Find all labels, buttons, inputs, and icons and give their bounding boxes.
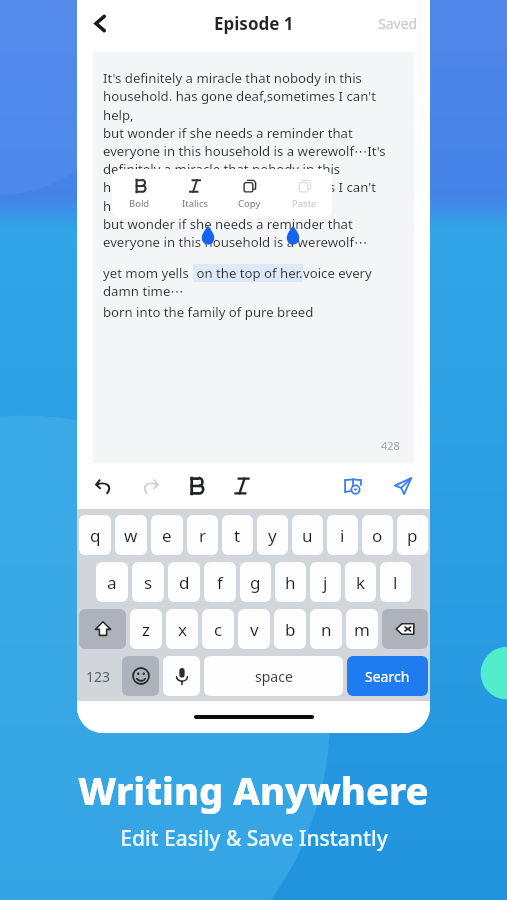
button[interactable]: s xyxy=(132,562,164,602)
button[interactable]: o xyxy=(362,515,393,555)
staticText: s xyxy=(144,571,153,594)
staticText: Copy xyxy=(238,197,261,210)
button[interactable]: v xyxy=(238,609,270,649)
staticText: definitely a miracle that nobody in this xyxy=(103,160,341,178)
staticText: k xyxy=(356,571,366,594)
staticText: z xyxy=(142,618,150,641)
button[interactable]: Preview xyxy=(338,471,368,501)
button[interactable]: p xyxy=(397,515,428,555)
staticText: y xyxy=(268,524,277,547)
button[interactable]: m xyxy=(346,609,378,649)
button[interactable]: x xyxy=(166,609,198,649)
staticText: l xyxy=(393,571,398,594)
staticText: f xyxy=(217,571,223,594)
button[interactable]: r xyxy=(187,515,218,555)
staticText: Writing Anywhere xyxy=(78,764,429,816)
button[interactable]: y xyxy=(257,515,288,555)
staticText: g xyxy=(250,571,261,594)
button[interactable]: space xyxy=(204,656,343,696)
button[interactable]: Search xyxy=(347,656,428,696)
staticText: n xyxy=(321,618,332,641)
button[interactable]: e xyxy=(151,515,183,555)
staticText: a xyxy=(107,571,117,594)
staticText: Bold xyxy=(129,197,150,210)
staticText: Paste xyxy=(292,197,317,210)
button[interactable]: Emoji xyxy=(122,656,159,696)
staticText: voice every xyxy=(303,264,372,282)
button[interactable]: l xyxy=(380,562,411,602)
button[interactable]: u xyxy=(292,515,323,555)
button[interactable]: j xyxy=(310,562,341,602)
button[interactable]: Backspace xyxy=(382,609,428,649)
staticText: It's definitely a miracle that nobody in… xyxy=(103,69,362,87)
button[interactable]: Voice input xyxy=(163,656,200,696)
staticText: w xyxy=(124,524,138,547)
staticText: d xyxy=(179,571,190,594)
staticText: Episode 1 xyxy=(214,12,294,35)
button[interactable]: Back xyxy=(83,6,117,40)
button[interactable]: Shift xyxy=(79,609,126,649)
button[interactable]: Undo xyxy=(89,471,119,501)
staticText: Edit Easily & Save Instantly xyxy=(120,824,388,853)
button[interactable]: Bold xyxy=(112,169,167,219)
staticText: yet mom yells xyxy=(103,264,193,282)
staticText: o xyxy=(372,524,383,547)
staticText: Search xyxy=(365,667,410,686)
staticText: u xyxy=(302,524,313,547)
button[interactable]: c xyxy=(202,609,234,649)
staticText: but wonder if she needs a reminder that xyxy=(103,124,353,142)
button[interactable]: Send xyxy=(388,471,418,501)
button[interactable]: k xyxy=(345,562,376,602)
staticText: household. has gone deaf,sometimes I can… xyxy=(103,87,404,124)
staticText: everyone in this household is a werewolf… xyxy=(103,142,386,160)
staticText: e xyxy=(162,524,172,547)
staticText: q xyxy=(90,524,101,547)
button[interactable]: b xyxy=(274,609,306,649)
button[interactable]: a xyxy=(96,562,128,602)
button[interactable]: Copy xyxy=(222,169,277,219)
staticText: i xyxy=(340,524,345,547)
staticText: c xyxy=(214,618,223,641)
staticText: born into the family of pure breed xyxy=(103,303,314,321)
button[interactable]: Redo xyxy=(135,471,165,501)
staticText: j xyxy=(323,571,328,594)
staticText: 428 xyxy=(381,438,400,453)
staticText: t xyxy=(234,524,241,547)
staticText: household. has gone deaf,sometimes I can… xyxy=(103,178,404,215)
button[interactable]: w xyxy=(115,515,147,555)
staticText: m xyxy=(354,618,370,641)
staticText: space xyxy=(255,667,293,686)
button[interactable]: Italics xyxy=(167,169,222,219)
button[interactable]: t xyxy=(222,515,253,555)
staticText: Italics xyxy=(182,197,208,210)
button[interactable]: z xyxy=(130,609,162,649)
button[interactable]: g xyxy=(240,562,271,602)
button[interactable]: Saved xyxy=(378,14,418,33)
button[interactable]: q xyxy=(79,515,111,555)
staticText: x xyxy=(178,618,187,641)
staticText: but wonder if she needs a reminder that xyxy=(103,215,353,233)
button[interactable]: Bold xyxy=(181,471,211,501)
staticText: p xyxy=(407,524,418,547)
button[interactable]: n xyxy=(310,609,342,649)
button[interactable]: f xyxy=(204,562,236,602)
staticText: h xyxy=(285,571,296,594)
button[interactable]: Paste xyxy=(277,169,332,219)
staticText: r xyxy=(199,524,207,547)
staticText: v xyxy=(250,618,259,641)
staticText: 123 xyxy=(86,667,111,686)
button[interactable]: i xyxy=(327,515,358,555)
button[interactable]: h xyxy=(275,562,306,602)
button[interactable]: 123 xyxy=(79,656,118,696)
button[interactable]: Italic xyxy=(227,471,257,501)
staticText: everyone in this household is a werewolf… xyxy=(103,233,368,251)
button[interactable]: d xyxy=(168,562,200,602)
staticText: b xyxy=(285,618,296,641)
staticText: on the top of her. xyxy=(193,264,303,282)
staticText: damn time⋯ xyxy=(103,282,184,300)
